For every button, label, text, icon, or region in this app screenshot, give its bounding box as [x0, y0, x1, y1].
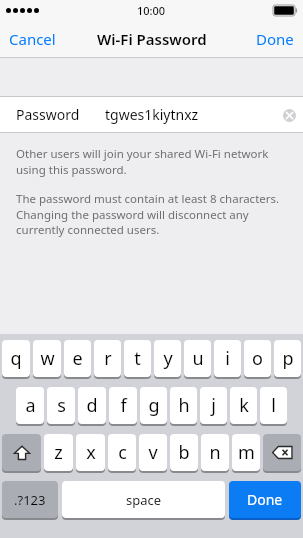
- staticText: space: [126, 491, 162, 509]
- staticText: Password: [16, 105, 80, 124]
- button[interactable]: Password: [0, 97, 303, 132]
- staticText: Done: [247, 490, 283, 509]
- staticText: s: [57, 393, 66, 418]
- button[interactable]: x: [76, 434, 105, 471]
- button[interactable]: w: [33, 340, 61, 377]
- button[interactable]: .?123: [2, 481, 58, 518]
- staticText: Wi-Fi Password: [97, 29, 207, 49]
- staticText: c: [118, 440, 127, 465]
- button[interactable]: o: [244, 340, 271, 377]
- staticText: u: [192, 346, 204, 371]
- staticText: e: [72, 346, 83, 371]
- staticText: n: [209, 440, 221, 465]
- button[interactable]: t: [124, 340, 151, 377]
- staticText: .?123: [14, 491, 46, 509]
- button[interactable]: l: [260, 387, 287, 424]
- staticText: Done: [256, 29, 294, 49]
- staticText: b: [178, 440, 190, 465]
- staticText: r: [104, 346, 112, 371]
- staticText: y: [163, 346, 173, 371]
- button[interactable]: b: [170, 434, 198, 471]
- staticText: h: [178, 393, 190, 418]
- button[interactable]: p: [274, 340, 301, 377]
- staticText: p: [282, 346, 294, 371]
- staticText: m: [238, 440, 255, 465]
- button[interactable]: m: [232, 434, 260, 471]
- staticText: t: [134, 346, 141, 371]
- button[interactable]: Shift: [2, 434, 41, 471]
- button[interactable]: d: [78, 387, 106, 424]
- button[interactable]: e: [64, 340, 91, 377]
- staticText: 10:00: [137, 3, 166, 18]
- button[interactable]: Clear text: [275, 101, 303, 129]
- button[interactable]: Done: [247, 20, 303, 57]
- staticText: The password must contain at least 8 cha…: [16, 191, 287, 237]
- button[interactable]: i: [214, 340, 241, 377]
- staticText: Cancel: [9, 29, 56, 49]
- button[interactable]: r: [94, 340, 121, 377]
- staticText: d: [86, 393, 98, 418]
- staticText: w: [40, 346, 55, 371]
- button[interactable]: q: [2, 340, 30, 377]
- staticText: k: [239, 393, 249, 418]
- button[interactable]: y: [154, 340, 181, 377]
- button[interactable]: g: [140, 387, 167, 424]
- staticText: l: [271, 393, 276, 418]
- button[interactable]: Done: [229, 481, 301, 518]
- staticText: i: [225, 346, 230, 371]
- button[interactable]: j: [200, 387, 227, 424]
- staticText: g: [148, 393, 160, 418]
- button[interactable]: k: [230, 387, 257, 424]
- button[interactable]: z: [44, 434, 73, 471]
- staticText: Other users will join your shared Wi-Fi …: [16, 146, 287, 177]
- button[interactable]: s: [47, 387, 75, 424]
- staticText: x: [86, 440, 96, 465]
- staticText: j: [211, 393, 216, 418]
- button[interactable]: v: [139, 434, 167, 471]
- button[interactable]: Backspace: [263, 434, 301, 471]
- button[interactable]: c: [108, 434, 136, 471]
- button[interactable]: n: [201, 434, 229, 471]
- staticText: a: [25, 393, 36, 418]
- button[interactable]: space: [62, 481, 225, 518]
- staticText: z: [54, 440, 63, 465]
- button[interactable]: a: [16, 387, 44, 424]
- staticText: f: [120, 393, 127, 418]
- button[interactable]: f: [109, 387, 137, 424]
- staticText: tgwes1kiytnxz: [105, 105, 199, 124]
- button[interactable]: u: [184, 340, 211, 377]
- button[interactable]: h: [170, 387, 197, 424]
- staticText: o: [252, 346, 263, 371]
- staticText: v: [148, 440, 158, 465]
- button[interactable]: Cancel: [0, 20, 65, 57]
- staticText: q: [10, 346, 22, 371]
